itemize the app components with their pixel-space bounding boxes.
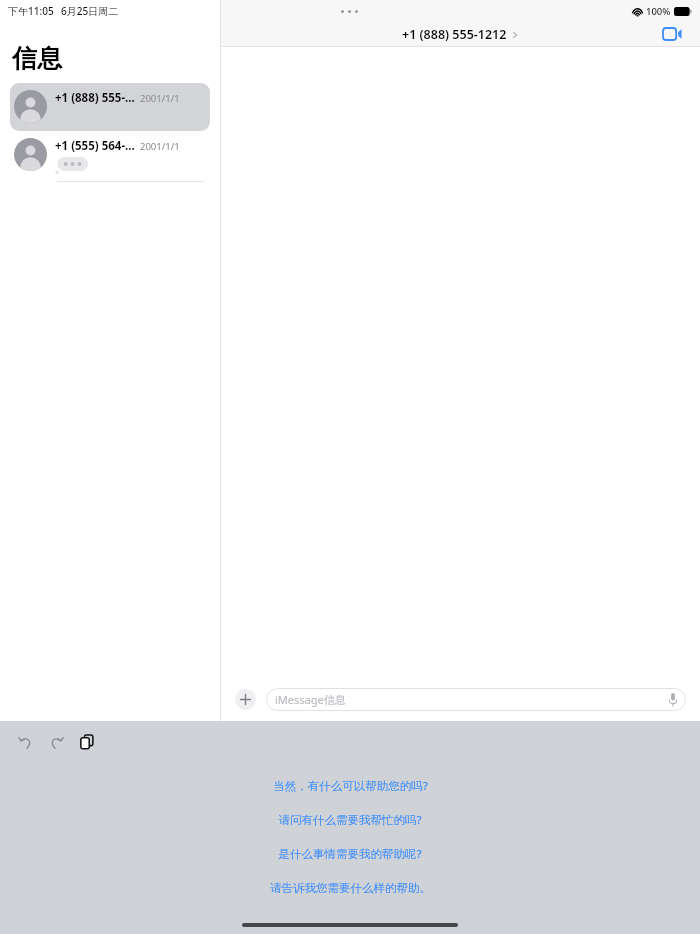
staticText: 请告诉我您需要什么样的帮助。 — [270, 881, 431, 895]
staticText: iMessage信息 — [275, 692, 669, 707]
button[interactable]: Paste — [74, 729, 100, 755]
button[interactable]: +1 (888) 555-1212 — [402, 26, 519, 43]
button[interactable]: iMessage信息 — [266, 688, 686, 711]
staticText: 2001/1/1 — [140, 92, 180, 105]
staticText: 信息 — [12, 43, 62, 74]
staticText: +1 (888) 555-... — [55, 90, 135, 106]
staticText: +1 (888) 555-1212 — [402, 26, 507, 43]
button[interactable]: +1 (555) 564-... — [10, 131, 210, 182]
staticText: 2001/1/1 — [140, 140, 180, 153]
staticText: 下午11:05 — [8, 4, 54, 18]
staticText: 当然，有什么可以帮助您的吗? — [273, 778, 428, 794]
button[interactable]: Add attachment — [235, 689, 256, 710]
button[interactable]: Undo — [12, 729, 38, 755]
button[interactable]: Redo — [43, 729, 69, 755]
staticText: 是什么事情需要我的帮助呢? — [278, 846, 422, 862]
button[interactable]: 是什么事情需要我的帮助呢? — [0, 837, 700, 871]
staticText: +1 (555) 564-... — [55, 138, 135, 154]
button[interactable]: +1 (888) 555-... — [10, 83, 210, 131]
button[interactable]: 请告诉我您需要什么样的帮助。 — [0, 871, 700, 905]
staticText: 请问有什么需要我帮忙的吗? — [278, 812, 422, 828]
button[interactable]: 请问有什么需要我帮忙的吗? — [0, 803, 700, 837]
button[interactable]: 当然，有什么可以帮助您的吗? — [0, 769, 700, 803]
button[interactable]: FaceTime video call — [659, 22, 685, 46]
staticText: 100% — [646, 5, 671, 18]
staticText: 6月25日周二 — [61, 4, 119, 18]
